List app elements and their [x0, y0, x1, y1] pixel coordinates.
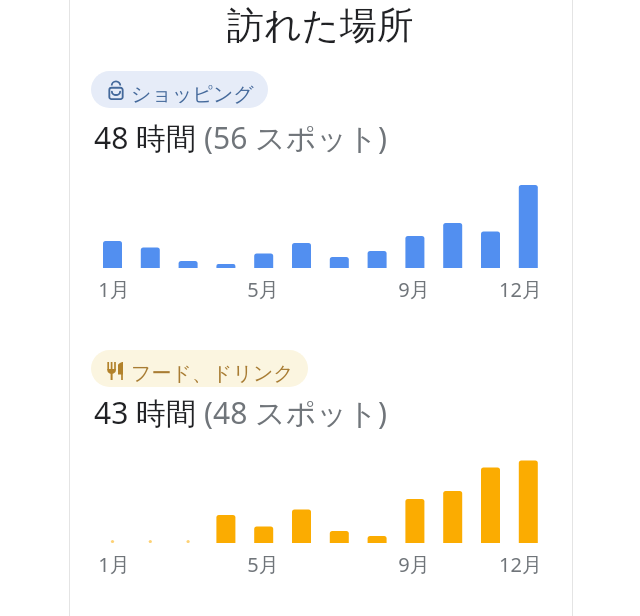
staticText: 1月	[98, 551, 130, 578]
staticText: 5月	[247, 276, 279, 303]
staticText: 訪れた場所	[227, 2, 414, 48]
button[interactable]: ショッピングの月別グラフ	[96, 176, 548, 300]
staticText: 1月	[98, 276, 130, 303]
staticText: 9月	[398, 551, 430, 578]
staticText: 5月	[247, 551, 279, 578]
button[interactable]: ショッピング	[91, 71, 268, 108]
staticText: 43 時間	[94, 392, 197, 433]
staticText: (56 スポット)	[204, 117, 387, 158]
button[interactable]: フード、ドリンク	[91, 350, 308, 387]
staticText: 48 時間	[94, 117, 197, 158]
staticText: 9月	[398, 276, 430, 303]
staticText: ショッピング	[131, 82, 254, 107]
button[interactable]: フード、ドリンクの月別グラフ	[96, 451, 548, 575]
staticText: 12月	[499, 276, 542, 303]
staticText: フード、ドリンク	[131, 361, 294, 386]
staticText: 12月	[499, 551, 542, 578]
staticText: (48 スポット)	[204, 392, 387, 433]
